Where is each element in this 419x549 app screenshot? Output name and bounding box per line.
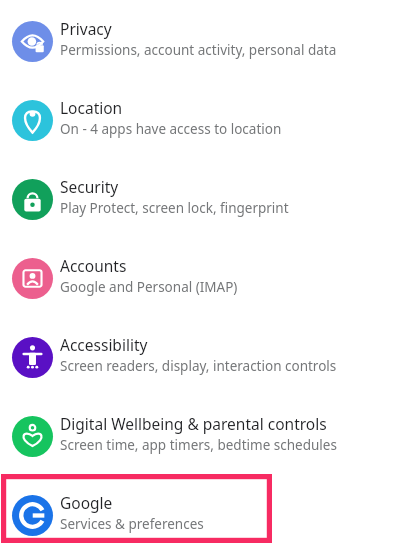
button[interactable]: Accessibility [0, 316, 419, 395]
staticText: Google [60, 492, 113, 513]
staticText: Privacy [60, 18, 112, 39]
staticText: Play Protect, screen lock, fingerprint [60, 199, 289, 217]
staticText: Google and Personal (IMAP) [60, 278, 238, 296]
button[interactable]: Location [0, 79, 419, 158]
button[interactable]: Digital Wellbeing & parental controls [0, 395, 419, 474]
staticText: Security [60, 176, 119, 197]
button[interactable]: Google [0, 474, 419, 549]
staticText: Services & preferences [60, 515, 204, 533]
staticText: On - 4 apps have access to location [60, 120, 282, 138]
button[interactable]: Privacy [0, 0, 419, 79]
staticText: Screen time, app timers, bedtime schedul… [60, 436, 337, 454]
staticText: Screen readers, display, interaction con… [60, 357, 337, 375]
staticText: Location [60, 97, 123, 118]
button[interactable]: Accounts [0, 237, 419, 316]
staticText: Accessibility [60, 334, 148, 355]
staticText: Permissions, account activity, personal … [60, 41, 337, 59]
button[interactable]: Security [0, 158, 419, 237]
staticText: Accounts [60, 255, 127, 276]
staticText: Digital Wellbeing & parental controls [60, 413, 327, 434]
